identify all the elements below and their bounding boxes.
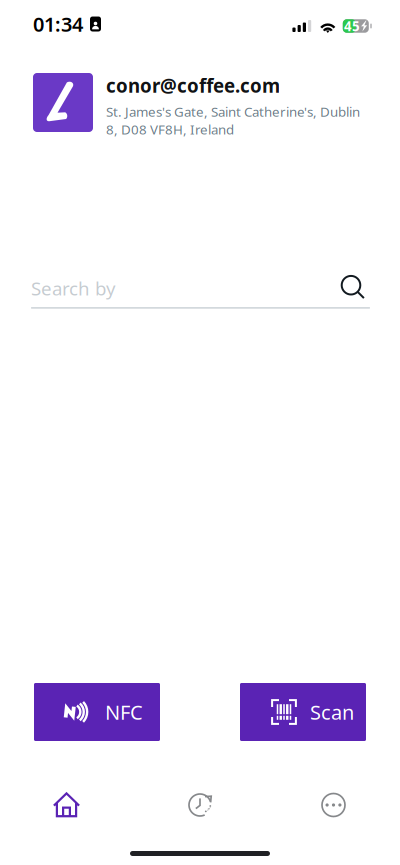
staticText: NFC (105, 699, 143, 725)
staticText: Search by (31, 276, 116, 301)
staticText: St. James's Gate, Saint Catherine's, Dub… (106, 103, 360, 138)
staticText: 01:34 (33, 11, 83, 37)
button[interactable]: Search (338, 271, 370, 305)
button[interactable]: Home (0, 781, 133, 829)
button[interactable]: NFC (34, 683, 160, 741)
staticText: 45 (344, 17, 360, 35)
staticText: conor@coffee.com (106, 73, 280, 98)
staticText: Scan (310, 699, 354, 725)
button[interactable]: Scan (240, 683, 366, 741)
button[interactable]: History (133, 781, 267, 829)
button[interactable]: More (267, 781, 400, 829)
